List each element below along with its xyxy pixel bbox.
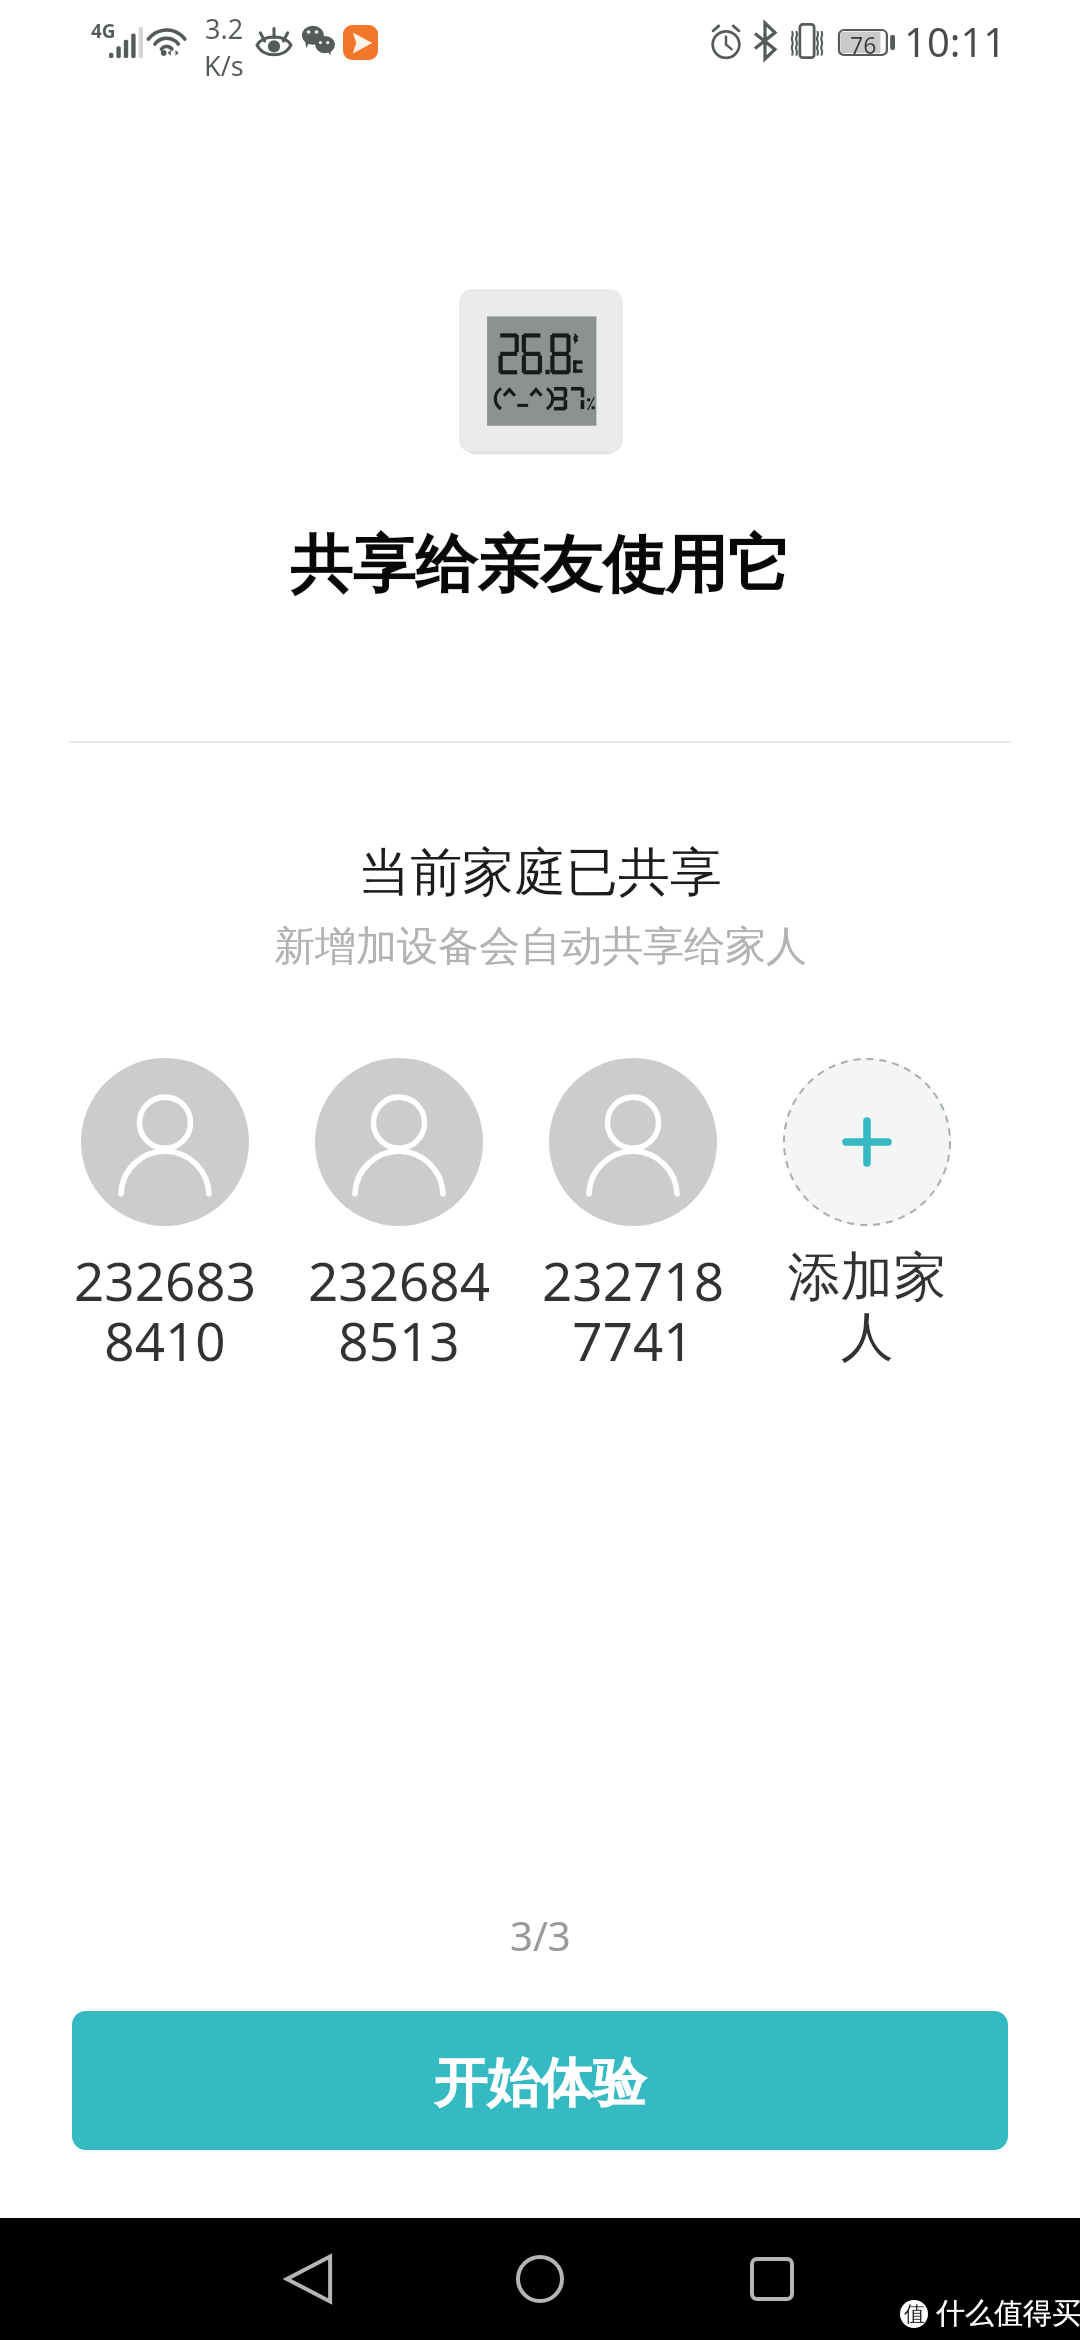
staticText: 2327187741	[533, 1244, 733, 1377]
staticText: 开始体验	[434, 2050, 646, 2117]
button[interactable]: Home	[427, 2218, 653, 2340]
staticText: 添加家人	[767, 1244, 967, 1371]
button[interactable]: 2326838410	[65, 1058, 265, 1377]
other: 添加家人	[783, 1058, 951, 1226]
staticText: 共享给亲友使用它	[290, 526, 790, 605]
button[interactable]: 2327187741	[533, 1058, 733, 1377]
staticText: 值	[904, 2301, 925, 2327]
staticText: 2326848513	[299, 1244, 499, 1377]
staticText: K/s	[204, 47, 244, 84]
staticText: 10:11	[904, 14, 1007, 68]
staticText: 4G	[91, 18, 116, 44]
staticText: 当前家庭已共享	[358, 840, 722, 906]
staticText: 2326838410	[65, 1244, 265, 1377]
staticText: 3/3	[510, 1908, 571, 1962]
button[interactable]: Recents	[659, 2218, 885, 2340]
button[interactable]: 开始体验	[72, 2011, 1008, 2150]
staticText: 什么值得买	[936, 2295, 1080, 2332]
staticText: 新增加设备会自动共享给家人	[274, 921, 807, 973]
staticText: 76	[850, 29, 877, 56]
button[interactable]: Back	[195, 2218, 422, 2340]
staticText: 3.2	[205, 10, 244, 47]
button[interactable]: 2326848513	[299, 1058, 499, 1377]
button[interactable]: 添加家人	[767, 1058, 967, 1371]
